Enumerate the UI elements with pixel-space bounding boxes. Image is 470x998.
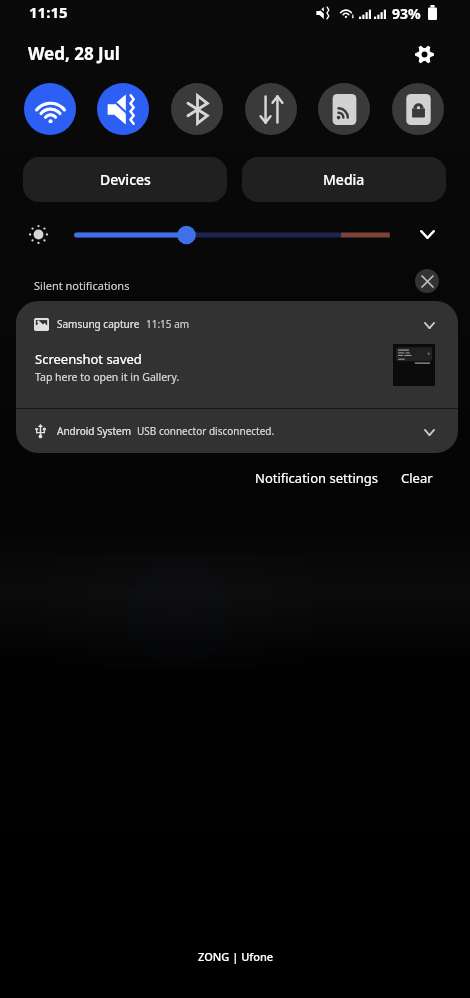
button[interactable]: Bluetooth (171, 83, 223, 135)
staticText: Wed, 28 Jul (28, 42, 120, 65)
staticText: 11:15 (29, 2, 68, 22)
button[interactable]: Mute (97, 83, 149, 135)
button[interactable]: Notification settings (249, 461, 385, 495)
button[interactable]: Smart View (318, 83, 370, 135)
staticText: ZONG | Ufone (198, 949, 274, 964)
staticText: USB connector disconnected. (137, 424, 275, 438)
button[interactable]: Expand brightness (412, 219, 443, 250)
staticText: Screenshot saved (35, 350, 142, 368)
button[interactable]: Secure Folder (392, 83, 444, 135)
staticText: 11:15 am (146, 317, 190, 331)
button[interactable]: Devices (23, 157, 227, 202)
button[interactable]: Dismiss silent notifications (415, 269, 439, 293)
staticText: Silent notifications (34, 278, 130, 293)
button[interactable]: Expand notification (414, 417, 444, 447)
staticText: Devices (100, 170, 151, 189)
button[interactable]: Android System (16, 409, 458, 453)
button[interactable]: Mobile data (245, 83, 297, 135)
staticText: Tap here to open it in Gallery. (35, 370, 180, 384)
staticText: Notification settings (255, 469, 379, 487)
button[interactable]: Clear (392, 461, 442, 495)
button[interactable]: Expand notification (414, 310, 444, 340)
staticText: Media (323, 170, 365, 189)
button[interactable]: Settings (408, 38, 440, 70)
button[interactable]: Samsung capture (16, 301, 458, 408)
button[interactable]: Wi-Fi (24, 83, 76, 135)
button[interactable]: Media (242, 157, 446, 202)
staticText: 93% (392, 4, 421, 21)
staticText: Samsung capture (57, 317, 140, 331)
staticText: Android System (57, 424, 132, 438)
staticText: Clear (401, 469, 433, 487)
